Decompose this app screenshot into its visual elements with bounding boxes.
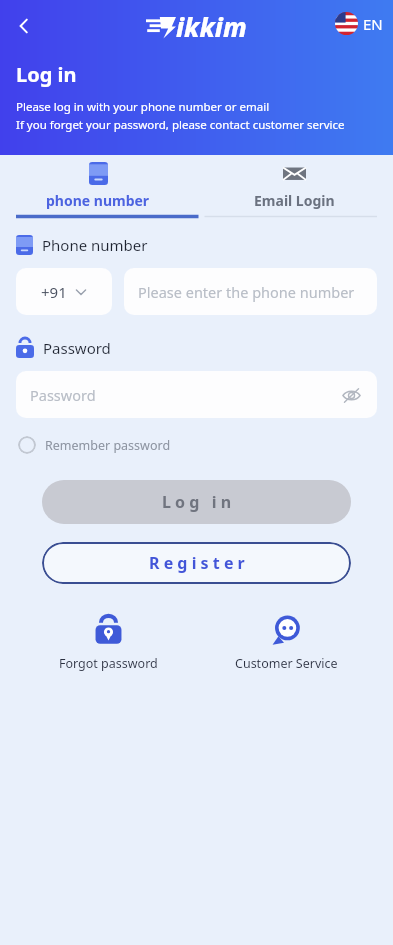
button[interactable]: Customer Service [211, 614, 361, 672]
staticText: Email Login [254, 191, 335, 210]
staticText: ikkim [176, 9, 247, 44]
button[interactable]: R e g i s t e r [42, 542, 351, 584]
staticText: Remember password [45, 437, 171, 454]
staticText: +91 [41, 282, 67, 302]
staticText: Forgot password [59, 655, 158, 672]
button[interactable]: Remember password [16, 434, 173, 456]
staticText: Please enter the phone number [138, 282, 355, 302]
staticText: Password [30, 385, 339, 405]
button[interactable]: Forgot password [33, 614, 183, 672]
staticText: Password [43, 338, 111, 358]
button[interactable]: L o g i n [42, 480, 351, 524]
button[interactable]: Email Login [196, 155, 393, 215]
staticText: R e g i s t e r [149, 552, 245, 574]
staticText: Customer Service [235, 655, 338, 672]
button[interactable]: EN [333, 12, 385, 35]
button[interactable]: phone number [0, 155, 196, 215]
other: Show password [339, 383, 363, 407]
staticText: phone number [46, 191, 150, 210]
button[interactable]: Please enter the phone number [124, 268, 377, 315]
button[interactable]: Back [4, 6, 44, 46]
staticText: Log in [16, 61, 77, 88]
staticText: Please log in with your phone number or … [16, 99, 270, 115]
staticText: If you forget your password, please cont… [16, 117, 345, 133]
button[interactable]: Password [16, 371, 377, 418]
button[interactable]: +91 [16, 268, 112, 315]
staticText: EN [363, 14, 383, 34]
staticText: L o g i n [162, 491, 232, 513]
staticText: Phone number [42, 235, 148, 255]
